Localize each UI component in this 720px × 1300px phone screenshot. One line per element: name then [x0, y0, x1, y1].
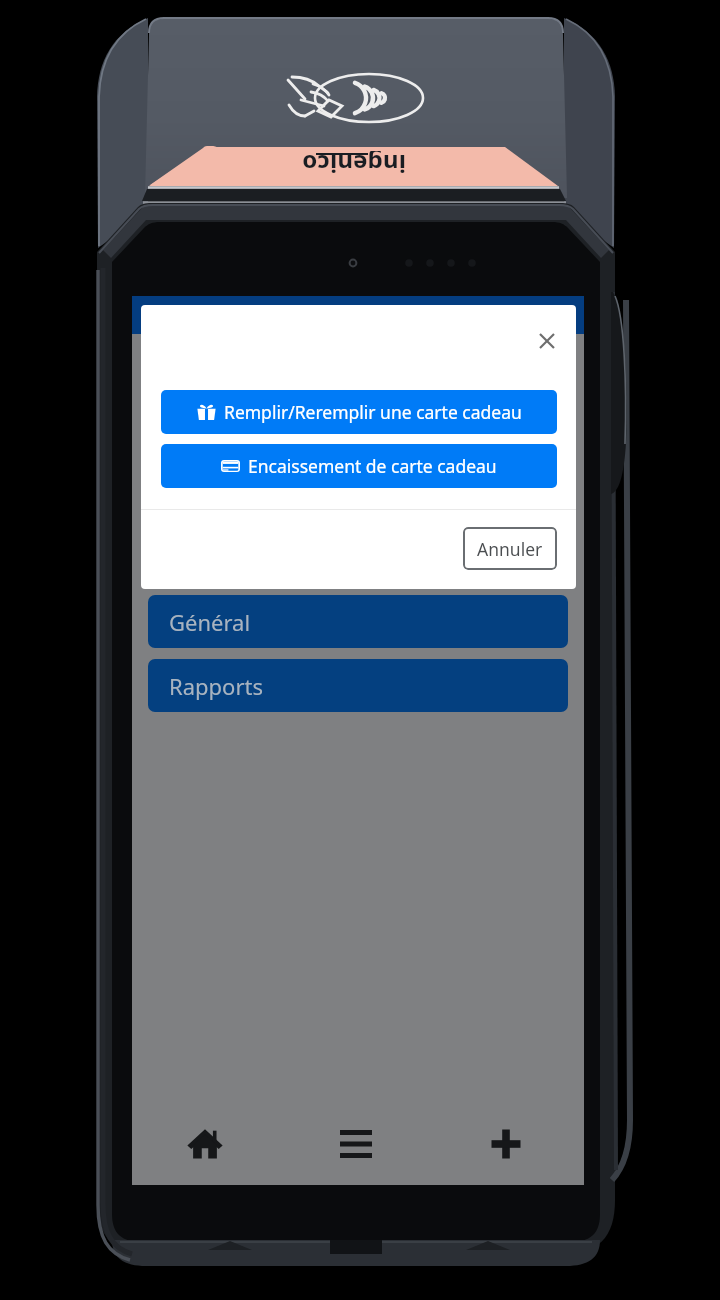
staticText: Remplir/Reremplir une carte cadeau	[224, 400, 522, 424]
button[interactable]: Ajouter	[469, 1107, 543, 1181]
staticText: Général	[169, 607, 251, 637]
button[interactable]: Encaissement de carte cadeau	[161, 444, 557, 488]
button[interactable]: Menu	[319, 1107, 393, 1181]
staticText: Rapports	[169, 671, 263, 701]
button[interactable]: Général	[148, 595, 568, 648]
staticText: Encaissement de carte cadeau	[248, 454, 497, 478]
button[interactable]: Annuler	[463, 527, 557, 570]
button[interactable]: Remplir/Reremplir une carte cadeau	[161, 390, 557, 434]
button[interactable]: Accueil	[168, 1107, 242, 1181]
button[interactable]: Rapports	[148, 659, 568, 712]
staticText: Annuler	[477, 537, 543, 561]
button[interactable]: Fermer	[533, 327, 561, 355]
staticText: ingenico	[301, 151, 406, 181]
